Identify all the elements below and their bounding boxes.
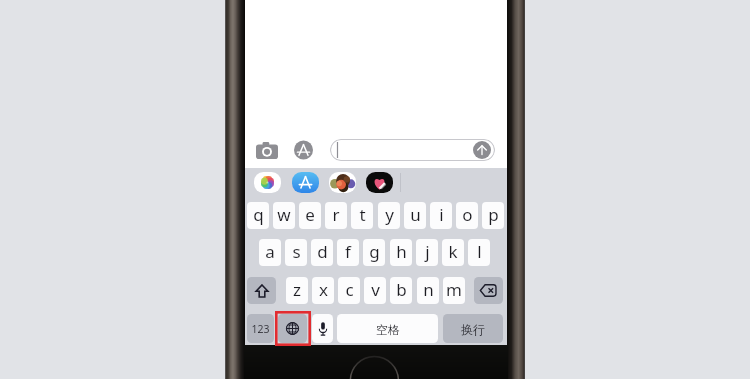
staticText: u [410,203,421,226]
button[interactable]: t [351,202,373,229]
staticText: x [319,278,328,301]
staticText: 空格 [376,322,400,337]
button[interactable]: j [416,239,438,266]
button[interactable]: k [442,239,464,266]
button[interactable]: b [390,277,412,304]
button[interactable]: c [338,277,360,304]
button[interactable]: v [364,277,386,304]
staticText: c [345,278,354,301]
button[interactable]: h [390,239,412,266]
button[interactable]: x [312,277,334,304]
button[interactable]: 换行 [443,314,503,343]
button[interactable]: z [286,277,308,304]
button[interactable]: i [430,202,452,229]
staticText: y [385,203,394,226]
button[interactable]: Next keyboard [278,314,307,343]
button[interactable]: e [299,202,321,229]
staticText: o [462,203,473,226]
staticText: 换行 [461,322,485,337]
button[interactable]: w [273,202,295,229]
button[interactable]: App Store [292,172,319,193]
staticText: q [253,203,264,226]
button[interactable]: Camera [256,142,278,159]
button[interactable]: Photos [254,172,281,193]
staticText: d [317,240,328,263]
button[interactable]: Message text field [330,139,495,161]
staticText: g [369,240,380,263]
button[interactable]: App Store [294,141,313,159]
staticText: i [439,203,444,226]
staticText: v [371,278,380,301]
staticText: z [293,278,301,301]
staticText: f [345,240,351,263]
button[interactable]: l [468,239,490,266]
button[interactable]: n [417,277,439,304]
staticText: s [292,240,301,263]
button[interactable]: m [443,277,465,304]
staticText: p [488,203,499,226]
button[interactable]: Recent photo [329,172,356,193]
button[interactable]: Shift [247,277,276,304]
button[interactable]: Send [473,141,491,159]
button[interactable]: p [482,202,504,229]
staticText: r [332,203,340,226]
staticText: t [359,203,366,226]
staticText: k [448,240,458,263]
button[interactable]: Digital Touch [366,172,393,193]
staticText: b [396,278,407,301]
button[interactable]: Dictation [312,314,333,343]
button[interactable]: g [363,239,385,266]
button[interactable]: d [311,239,333,266]
button[interactable]: 123 [247,314,274,343]
staticText: 123 [251,322,270,336]
staticText: w [277,203,291,226]
staticText: e [305,203,315,226]
button[interactable]: y [378,202,400,229]
button[interactable]: f [337,239,359,266]
staticText: j [425,240,430,263]
staticText: l [477,240,482,263]
button[interactable]: u [404,202,426,229]
staticText: m [446,278,462,301]
staticText: h [396,240,407,263]
button[interactable]: 空格 [337,314,438,343]
button[interactable]: Backspace [474,277,503,304]
button[interactable]: o [456,202,478,229]
staticText: a [265,240,275,263]
staticText: n [423,278,434,301]
button[interactable]: r [325,202,347,229]
button[interactable]: a [259,239,281,266]
button[interactable]: s [285,239,307,266]
button[interactable]: q [247,202,269,229]
